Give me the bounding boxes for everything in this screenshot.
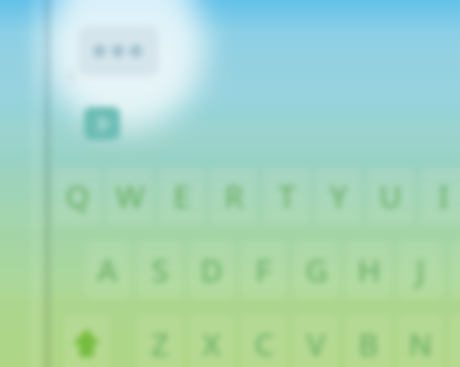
button[interactable]: H (346, 241, 391, 299)
button[interactable]: E (159, 167, 204, 225)
staticText: F (255, 249, 272, 291)
staticText: B (358, 323, 379, 365)
staticText: H (357, 249, 381, 291)
staticText: C (254, 323, 274, 365)
staticText: Q (65, 175, 90, 217)
button[interactable]: A (85, 241, 130, 299)
button[interactable]: U (368, 167, 413, 225)
button[interactable]: X (189, 315, 234, 367)
staticText: D (200, 249, 223, 291)
button[interactable]: Z (137, 315, 182, 367)
staticText: N (408, 323, 433, 365)
button[interactable]: Shift (64, 315, 109, 367)
button[interactable]: R (211, 167, 256, 225)
button[interactable]: Y (316, 167, 361, 225)
staticText: J (416, 249, 425, 291)
staticText: Z (151, 323, 169, 365)
staticText: S (151, 249, 169, 291)
staticText: E (173, 175, 191, 217)
button[interactable]: Q (55, 167, 100, 225)
staticText: V (306, 323, 326, 365)
staticText: Y (329, 175, 348, 217)
staticText: X (202, 323, 221, 365)
button[interactable]: N (398, 315, 443, 367)
button[interactable]: F (241, 241, 286, 299)
button[interactable]: C (241, 315, 286, 367)
button[interactable]: J (398, 241, 443, 299)
staticText: I (438, 175, 449, 217)
button[interactable]: I (421, 167, 460, 225)
staticText: U (379, 175, 402, 217)
staticText: G (305, 249, 328, 291)
button[interactable]: D (189, 241, 234, 299)
button[interactable]: V (293, 315, 338, 367)
staticText: R (224, 175, 244, 217)
button[interactable]: S (137, 241, 182, 299)
button[interactable]: T (264, 167, 309, 225)
button[interactable]: G (294, 241, 339, 299)
button[interactable]: K (451, 241, 460, 299)
button[interactable]: W (107, 167, 152, 225)
staticText: W (115, 175, 145, 217)
staticText: A (97, 249, 118, 291)
staticText: T (278, 175, 296, 217)
button[interactable]: B (346, 315, 391, 367)
